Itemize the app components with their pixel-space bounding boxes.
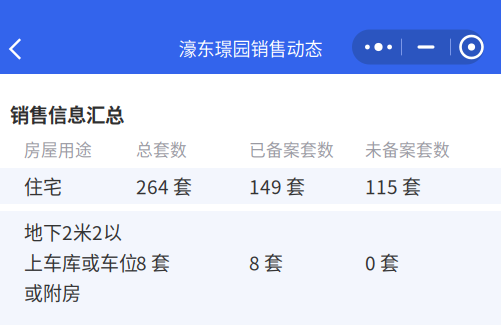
staticText: 或附房 xyxy=(24,279,81,306)
staticText: 0 套 xyxy=(365,248,399,276)
staticText: 8 套 xyxy=(136,248,170,276)
button[interactable]: Minimize xyxy=(402,29,450,64)
button[interactable]: Back xyxy=(0,26,31,72)
staticText: 未备案套数 xyxy=(365,137,450,161)
staticText: 264 套 xyxy=(136,172,192,200)
button[interactable]: Close xyxy=(451,29,484,64)
staticText: 销售信息汇总 xyxy=(10,100,124,128)
staticText: 上车库或车位 xyxy=(24,248,138,276)
staticText: 8 套 xyxy=(249,248,283,276)
button[interactable]: More xyxy=(352,29,401,64)
staticText: 总套数 xyxy=(136,137,187,161)
staticText: 地下2米2以 xyxy=(24,218,122,245)
staticText: 房屋用途 xyxy=(24,137,92,161)
staticText: 149 套 xyxy=(249,172,305,200)
staticText: 已备案套数 xyxy=(249,137,334,161)
staticText: 住宅 xyxy=(24,172,62,200)
staticText: 濠东璟园销售动态 xyxy=(178,35,322,61)
staticText: 115 套 xyxy=(365,172,421,200)
